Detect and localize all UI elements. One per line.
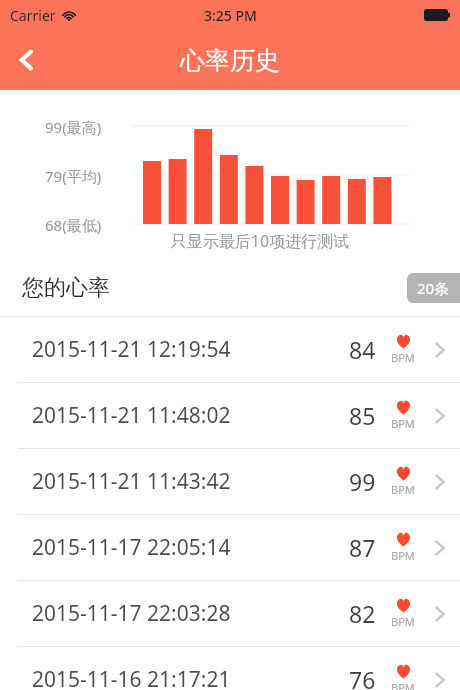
button[interactable]: 2015-11-17 22:03:28 [0,581,460,646]
staticText: 您的心率 [22,274,110,302]
button[interactable]: 2015-11-16 21:17:21 [0,647,460,690]
staticText: 2015-11-16 21:17:21 [32,665,231,690]
staticText: 79(平均) [45,166,102,186]
button[interactable]: 20条 [407,273,460,303]
staticText: BPM [391,548,415,563]
staticText: 2015-11-21 11:43:42 [32,467,231,496]
staticText: 20条 [417,278,450,298]
staticText: 2015-11-17 22:05:14 [32,533,231,562]
staticText: 只显示最后10项进行测试 [60,230,460,252]
staticText: 2015-11-17 22:03:28 [32,599,231,628]
staticText: BPM [391,680,415,690]
staticText: Carrier [10,6,56,25]
staticText: 2015-11-21 12:19:54 [32,335,231,364]
staticText: BPM [391,416,415,431]
staticText: 99 [349,466,376,497]
staticText: 3:25 PM [204,6,257,25]
staticText: 82 [349,598,376,629]
staticText: 2015-11-21 11:48:02 [32,401,231,430]
staticText: BPM [391,350,415,365]
staticText: 心率历史 [180,45,280,76]
staticText: 87 [349,532,376,563]
staticText: BPM [391,614,415,629]
staticText: 99(最高) [45,117,102,137]
staticText: 76 [349,664,376,690]
button[interactable]: Back [0,33,54,87]
button[interactable]: 2015-11-17 22:05:14 [0,515,460,580]
staticText: BPM [391,482,415,497]
staticText: 84 [349,334,376,365]
button[interactable]: 2015-11-21 11:43:42 [0,449,460,514]
staticText: 68(最低) [45,215,102,235]
staticText: 85 [349,400,376,431]
button[interactable]: 2015-11-21 11:48:02 [0,383,460,448]
button[interactable]: 2015-11-21 12:19:54 [0,317,460,382]
